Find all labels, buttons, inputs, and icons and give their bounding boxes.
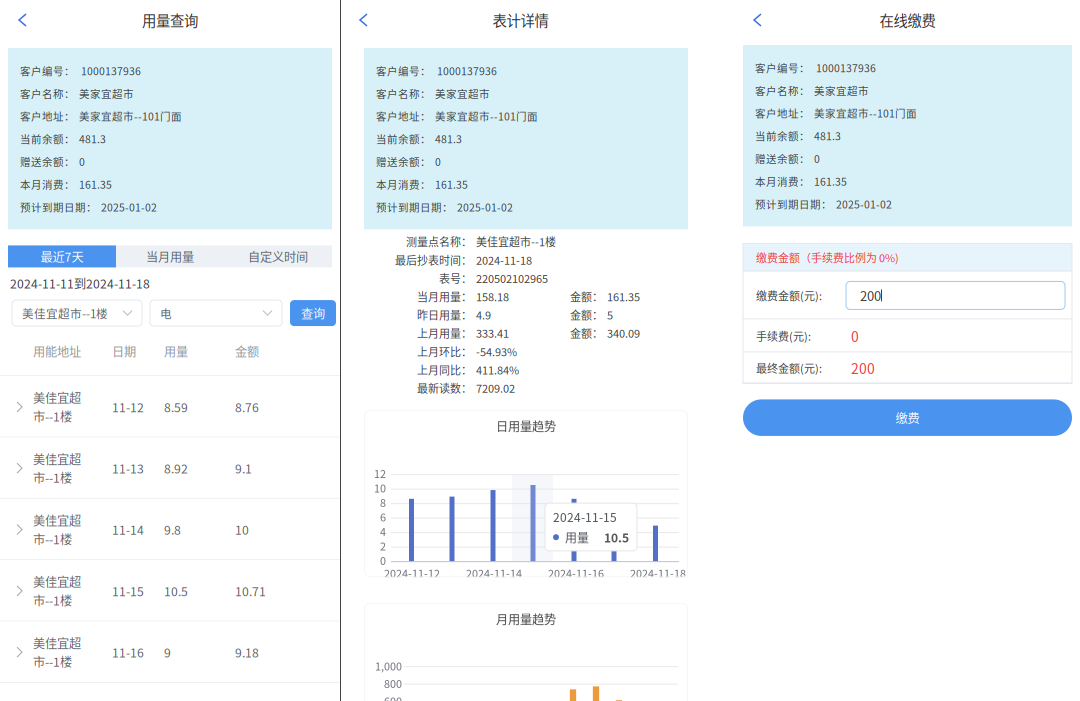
staticText: 481.3 bbox=[435, 131, 462, 146]
staticText: 市--1楼 bbox=[33, 591, 72, 609]
staticText: 客户名称： bbox=[376, 86, 431, 101]
staticText: 1000137936 bbox=[79, 63, 141, 78]
staticText: 4 bbox=[380, 524, 386, 539]
staticText: 10.5 bbox=[604, 528, 629, 546]
staticText: 161.35 bbox=[814, 173, 847, 189]
staticText: 4.9 bbox=[476, 307, 491, 323]
staticText: 2024-11-11到2024-11-18 bbox=[10, 274, 150, 292]
button[interactable]: 最近7天 bbox=[8, 245, 116, 267]
staticText: 美佳宜超 bbox=[33, 573, 81, 590]
button[interactable]: 美佳宜超 bbox=[0, 499, 340, 560]
staticText: 美佳宜超 bbox=[33, 389, 81, 406]
staticText: 美佳宜超市--1楼 bbox=[22, 305, 108, 321]
staticText: 1000137936 bbox=[814, 60, 876, 75]
staticText: 日用量趋势 bbox=[496, 417, 556, 435]
staticText: 12 bbox=[374, 466, 386, 481]
staticText: 美佳宜超市--1楼 bbox=[476, 234, 556, 249]
button[interactable]: Back bbox=[10, 7, 35, 33]
staticText: 本月消费： bbox=[755, 173, 810, 189]
staticText: 预计到期日期： bbox=[376, 199, 453, 214]
staticText: 测量点名称： bbox=[406, 234, 472, 249]
staticText: -54.93% bbox=[476, 343, 517, 359]
button[interactable]: 电 bbox=[150, 300, 282, 326]
staticText: 9 bbox=[164, 643, 171, 661]
staticText: 1,000 bbox=[375, 658, 402, 674]
staticText: 市--1楼 bbox=[33, 407, 72, 425]
staticText: 表号： bbox=[439, 270, 472, 286]
staticText: 600 bbox=[384, 693, 402, 701]
staticText: 0 bbox=[435, 154, 441, 169]
staticText: 8 bbox=[380, 495, 386, 510]
staticText: 161.35 bbox=[607, 288, 640, 304]
staticText: 2024-11-14 bbox=[466, 565, 522, 581]
staticText: 0 bbox=[380, 553, 386, 568]
staticText: 11-16 bbox=[112, 643, 144, 661]
staticText: 美家宜超市 bbox=[435, 86, 490, 101]
button[interactable]: 缴费 bbox=[743, 399, 1072, 436]
staticText: 用量查询 bbox=[142, 10, 198, 30]
staticText: 自定义时间 bbox=[248, 248, 308, 265]
staticText: 缴费金额（手续费比例为 0%) bbox=[756, 249, 899, 265]
button[interactable]: Back bbox=[351, 7, 376, 33]
staticText: 最新读数： bbox=[417, 380, 472, 396]
button[interactable]: 美佳宜超 bbox=[0, 560, 340, 621]
staticText: 9.18 bbox=[235, 643, 259, 661]
staticText: 158.18 bbox=[476, 288, 509, 304]
staticText: 赠送余额： bbox=[376, 154, 431, 169]
staticText: 手续费(元): bbox=[756, 328, 811, 344]
button[interactable]: 美佳宜超市--1楼 bbox=[12, 300, 142, 326]
staticText: 金额： bbox=[570, 307, 603, 323]
button[interactable]: Back bbox=[745, 7, 770, 33]
staticText: 800 bbox=[384, 676, 402, 691]
staticText: 200 bbox=[860, 286, 881, 305]
staticText: 2025-01-02 bbox=[836, 196, 892, 211]
staticText: 10.71 bbox=[235, 582, 266, 600]
staticText: 11-14 bbox=[112, 521, 144, 538]
staticText: 8.92 bbox=[164, 459, 188, 477]
staticText: 0 bbox=[851, 326, 859, 346]
staticText: 昨日用量： bbox=[417, 307, 472, 323]
staticText: 预计到期日期： bbox=[755, 196, 832, 211]
staticText: 美佳宜超 bbox=[33, 511, 81, 529]
staticText: 220502102965 bbox=[476, 270, 548, 286]
staticText: 客户地址： bbox=[376, 108, 431, 124]
button[interactable]: 查询 bbox=[290, 300, 336, 326]
staticText: 赠送余额： bbox=[20, 154, 75, 169]
staticText: 6 bbox=[380, 509, 386, 525]
staticText: 当月用量 bbox=[146, 248, 194, 265]
staticText: 10 bbox=[374, 480, 386, 496]
staticText: 11-13 bbox=[112, 459, 144, 477]
staticText: 161.35 bbox=[79, 176, 112, 192]
staticText: 美家宜超市 bbox=[814, 83, 869, 98]
staticText: 当前余额： bbox=[20, 131, 75, 146]
staticText: 7209.02 bbox=[476, 380, 515, 396]
button[interactable]: 美佳宜超 bbox=[0, 621, 340, 683]
staticText: 最近7天 bbox=[40, 248, 83, 265]
staticText: 表计详情 bbox=[492, 10, 548, 30]
staticText: 预计到期日期： bbox=[20, 199, 97, 214]
staticText: 当前余额： bbox=[376, 131, 431, 146]
staticText: 金额 bbox=[235, 342, 259, 360]
staticText: 美佳宜超 bbox=[33, 634, 81, 652]
button[interactable]: 美佳宜超 bbox=[0, 437, 340, 499]
staticText: 客户名称： bbox=[20, 86, 75, 101]
staticText: 当前余额： bbox=[755, 128, 810, 143]
staticText: 200 bbox=[851, 358, 875, 378]
button[interactable]: 美佳宜超 bbox=[0, 376, 340, 437]
staticText: 最后抄表时间： bbox=[395, 252, 472, 268]
button[interactable]: 自定义时间 bbox=[224, 245, 332, 267]
staticText: 美佳宜超 bbox=[33, 450, 81, 468]
staticText: 481.3 bbox=[814, 128, 841, 143]
staticText: 2024-11-12 bbox=[384, 565, 440, 581]
staticText: 2025-01-02 bbox=[101, 199, 157, 214]
staticText: 8.59 bbox=[164, 398, 188, 416]
staticText: 11-12 bbox=[112, 398, 144, 416]
button[interactable]: 当月用量 bbox=[116, 245, 224, 267]
staticText: 用量 bbox=[164, 342, 188, 360]
staticText: 客户编号： bbox=[755, 60, 810, 75]
staticText: 缴费金额(元): bbox=[756, 287, 822, 303]
staticText: 10 bbox=[235, 521, 249, 538]
staticText: 上月同比： bbox=[417, 362, 472, 378]
staticText: 2024-11-15 bbox=[553, 508, 617, 525]
staticText: 上月环比： bbox=[417, 343, 472, 359]
